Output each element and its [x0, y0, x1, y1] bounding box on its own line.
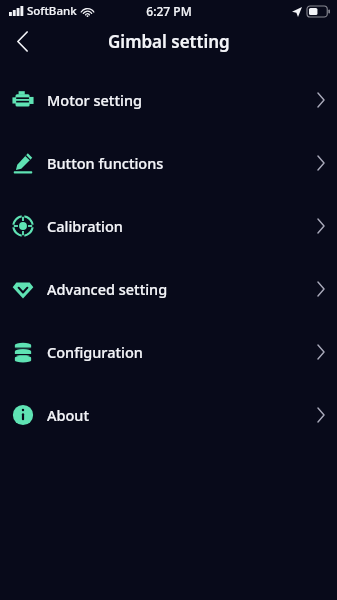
button[interactable]: Button functions [0, 131, 337, 194]
staticText: SoftBank [27, 3, 77, 19]
staticText: Calibration [47, 216, 123, 236]
button[interactable]: Advanced setting [0, 257, 337, 320]
button[interactable]: About [0, 383, 337, 446]
staticText: Gimbal setting [108, 30, 230, 53]
button[interactable]: Configuration [0, 320, 337, 383]
button[interactable]: Calibration [0, 194, 337, 257]
button[interactable]: Motor setting [0, 68, 337, 131]
staticText: About [47, 405, 89, 425]
staticText: Advanced setting [47, 279, 168, 299]
staticText: Button functions [47, 153, 164, 173]
button[interactable]: Back [0, 22, 44, 61]
staticText: Motor setting [47, 90, 142, 110]
staticText: 6:27 PM [146, 3, 192, 19]
staticText: Configuration [47, 342, 143, 362]
